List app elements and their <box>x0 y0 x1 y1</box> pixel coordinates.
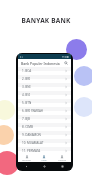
button[interactable]: 10. MUAMALAT <box>18 139 71 147</box>
staticText: BANYAK BANK <box>0 16 92 25</box>
staticText: 5. BTN <box>22 101 32 105</box>
staticText: Lainnya <box>58 159 66 162</box>
button[interactable]: Back <box>18 165 35 168</box>
staticText: Beranda <box>22 159 31 162</box>
button[interactable]: 9. DANAMON <box>18 131 71 139</box>
button[interactable]: 8. CIMB <box>18 123 71 131</box>
button[interactable]: 5. BTN <box>18 99 71 107</box>
button[interactable]: Home <box>35 165 53 168</box>
button[interactable]: 1. BCA <box>18 67 71 75</box>
staticText: 6. BRI SYARIAH <box>22 109 44 113</box>
staticText: 11. PERMATA <box>22 149 41 153</box>
button[interactable]: 11. PERMATA <box>18 147 71 155</box>
staticText: 9. DANAMON <box>22 133 41 137</box>
button[interactable]: Akun <box>35 155 53 162</box>
staticText: 7. BJB <box>22 117 31 121</box>
button[interactable]: 4. BSI <box>18 91 71 99</box>
button[interactable]: Recents <box>53 165 71 168</box>
button[interactable]: 3. BNI <box>18 83 71 91</box>
staticText: Bank Populer Indonesia <box>21 61 60 66</box>
staticText: 2. BRI <box>22 77 31 81</box>
button[interactable]: 7. BJB <box>18 115 71 123</box>
button[interactable]: Search <box>64 61 68 65</box>
staticText: 3. BNI <box>22 85 31 89</box>
button[interactable]: 6. BRI SYARIAH <box>18 107 71 115</box>
staticText: Akun <box>41 159 47 162</box>
button[interactable]: Lainnya <box>53 155 71 162</box>
staticText: 1. BCA <box>22 69 32 73</box>
button[interactable]: Beranda <box>18 155 35 162</box>
staticText: 10. MUAMALAT <box>22 141 44 145</box>
staticText: 4. BSI <box>22 93 30 97</box>
staticText: 8. CIMB <box>22 125 33 129</box>
button[interactable]: 2. BRI <box>18 75 71 83</box>
